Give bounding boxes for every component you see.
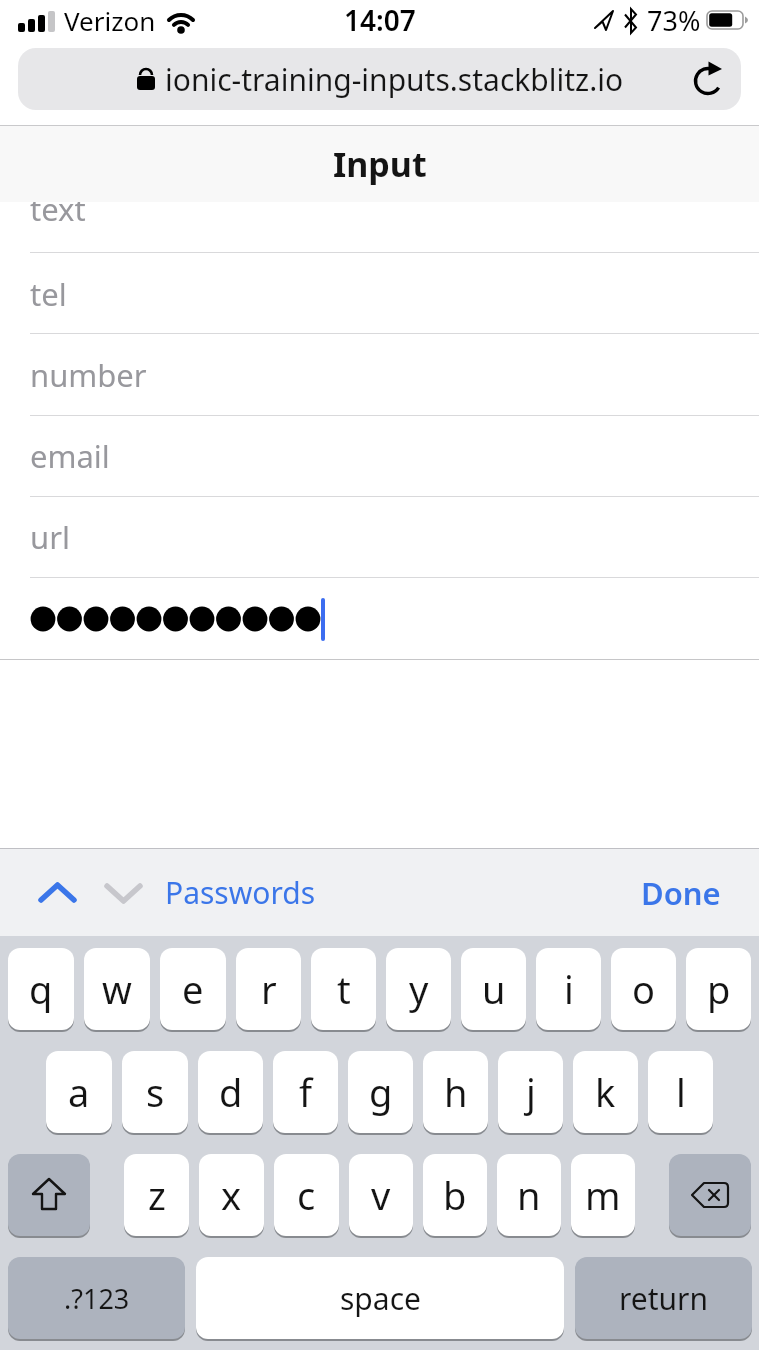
staticText: number — [30, 354, 147, 396]
staticText: Done — [641, 872, 721, 914]
button[interactable]: .?123 — [8, 1257, 185, 1339]
staticText: .?123 — [64, 1280, 130, 1317]
button[interactable]: i — [536, 948, 601, 1030]
button[interactable] — [8, 1154, 90, 1236]
staticText: b — [443, 1169, 467, 1221]
staticText: Input — [333, 141, 427, 187]
staticText: j — [526, 1066, 536, 1118]
button[interactable]: space — [196, 1257, 564, 1339]
staticText: u — [482, 963, 506, 1015]
staticText: text — [30, 202, 86, 230]
button[interactable]: text — [30, 202, 759, 230]
button[interactable]: f — [273, 1051, 338, 1133]
staticText: w — [102, 963, 132, 1015]
staticText: return — [619, 1278, 709, 1319]
button[interactable]: Passwords — [165, 872, 316, 913]
staticText: 14:07 — [344, 1, 416, 39]
staticText: m — [585, 1169, 621, 1221]
button[interactable]: n — [497, 1154, 561, 1236]
staticText: g — [369, 1066, 393, 1118]
button[interactable]: return — [575, 1257, 752, 1339]
staticText: t — [337, 963, 351, 1015]
button[interactable]: h — [423, 1051, 488, 1133]
button[interactable] — [38, 881, 77, 905]
staticText: x — [221, 1169, 242, 1221]
button[interactable]: v — [349, 1154, 413, 1236]
button[interactable]: ionic-training-inputs.stackblitz.io — [18, 48, 741, 110]
staticText: q — [29, 963, 53, 1015]
button[interactable]: m — [571, 1154, 635, 1236]
staticText: url — [30, 516, 70, 558]
button[interactable]: b — [423, 1154, 487, 1236]
staticText: z — [148, 1169, 166, 1221]
staticText: s — [146, 1066, 165, 1118]
staticText: n — [517, 1169, 541, 1221]
button[interactable]: q — [8, 948, 74, 1030]
button[interactable]: o — [611, 948, 676, 1030]
staticText: email — [30, 435, 110, 477]
staticText: Verizon — [64, 3, 156, 38]
staticText: k — [595, 1066, 616, 1118]
staticText: i — [564, 963, 574, 1015]
button[interactable]: g — [348, 1051, 413, 1133]
button[interactable]: number — [30, 354, 759, 396]
button[interactable]: x — [199, 1154, 264, 1236]
staticText: 73% — [647, 2, 701, 39]
button[interactable]: u — [461, 948, 526, 1030]
staticText: ionic-training-inputs.stackblitz.io — [165, 59, 624, 100]
button[interactable]: z — [124, 1154, 189, 1236]
staticText: a — [68, 1066, 90, 1118]
staticText: p — [707, 963, 731, 1015]
button[interactable]: t — [311, 948, 376, 1030]
staticText: e — [182, 963, 204, 1015]
staticText: y — [409, 963, 429, 1015]
staticText: c — [297, 1169, 316, 1221]
staticText: f — [299, 1066, 313, 1118]
button[interactable]: c — [274, 1154, 339, 1236]
button[interactable]: Done — [641, 872, 721, 914]
button[interactable]: l — [648, 1051, 713, 1133]
button[interactable]: r — [236, 948, 301, 1030]
button[interactable]: d — [198, 1051, 263, 1133]
button[interactable]: email — [30, 435, 759, 477]
button[interactable]: y — [386, 948, 451, 1030]
button[interactable]: a — [46, 1051, 112, 1133]
button[interactable]: s — [122, 1051, 188, 1133]
staticText: l — [676, 1066, 686, 1118]
button[interactable]: k — [573, 1051, 638, 1133]
button[interactable]: p — [686, 948, 751, 1030]
button[interactable] — [669, 1154, 751, 1236]
button[interactable]: tel — [30, 273, 759, 315]
staticText: d — [219, 1066, 243, 1118]
button[interactable]: w — [84, 948, 150, 1030]
staticText: tel — [30, 273, 67, 315]
staticText: r — [261, 963, 277, 1015]
button[interactable] — [104, 881, 143, 905]
staticText: o — [632, 963, 655, 1015]
button[interactable]: url — [30, 516, 759, 558]
button[interactable]: e — [160, 948, 226, 1030]
staticText: space — [340, 1278, 421, 1319]
staticText: v — [371, 1169, 391, 1221]
staticText: h — [444, 1066, 468, 1118]
button[interactable]: j — [498, 1051, 563, 1133]
